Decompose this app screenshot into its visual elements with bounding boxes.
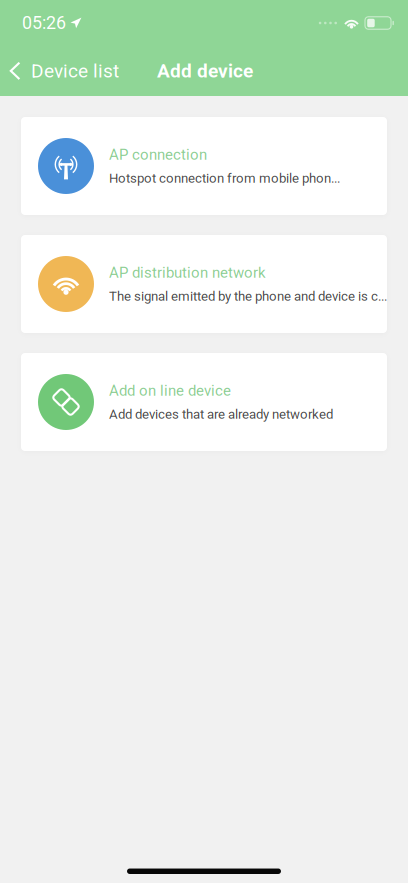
staticText: Hotspot connection from mobile phon... bbox=[109, 170, 340, 186]
staticText: The signal emitted by the phone and devi… bbox=[109, 288, 387, 304]
staticText: AP connection bbox=[109, 146, 207, 163]
button[interactable]: AP connection bbox=[21, 117, 387, 215]
staticText: Add devices that are already networked bbox=[109, 406, 333, 422]
button[interactable]: AP distribution network bbox=[21, 235, 387, 333]
staticText: Device list bbox=[31, 60, 119, 82]
button[interactable]: Add on line device bbox=[21, 353, 387, 451]
button[interactable]: Device list bbox=[0, 52, 129, 90]
staticText: Add device bbox=[157, 60, 253, 82]
staticText: AP distribution network bbox=[109, 264, 266, 281]
staticText: Add on line device bbox=[109, 382, 231, 399]
staticText: 05:26 bbox=[22, 12, 66, 33]
button[interactable]: Add device bbox=[129, 52, 267, 90]
